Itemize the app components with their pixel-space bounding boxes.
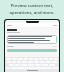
button[interactable]: Confirm <box>7 49 57 52</box>
staticText: Preview custom text, <box>3 3 61 9</box>
button[interactable] <box>7 35 57 44</box>
button[interactable]: Send <box>53 25 57 26</box>
staticText: operations, and more. <box>3 10 61 16</box>
button[interactable]: Cancel <box>7 25 12 26</box>
